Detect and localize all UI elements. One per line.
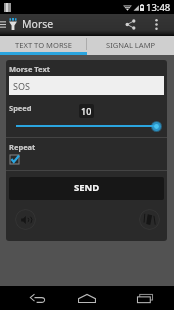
staticText: 10: [81, 105, 92, 117]
button[interactable]: More options: [143, 14, 169, 34]
staticText: Morse: [22, 17, 54, 31]
button[interactable]: SOS: [9, 76, 164, 95]
staticText: Morse Text: [9, 64, 51, 74]
button[interactable]: Play sound: [15, 209, 36, 230]
staticText: TEXT TO MORSE: [15, 40, 72, 50]
staticText: SIGNAL LAMP: [106, 40, 156, 50]
button[interactable]: Back: [17, 286, 57, 310]
button[interactable]: Flashlight: [139, 209, 160, 230]
button[interactable]: Repeat checkbox: [8, 153, 21, 166]
staticText: SOS: [13, 80, 30, 92]
button[interactable]: TEXT TO MORSE: [0, 36, 86, 52]
staticText: Speed: [9, 103, 32, 113]
button[interactable]: Share: [117, 14, 143, 34]
staticText: Repeat: [9, 142, 36, 152]
staticText: SEND: [74, 181, 100, 194]
button[interactable]: Recent apps: [125, 286, 165, 310]
button[interactable]: [6, 120, 167, 132]
button[interactable]: Navigation drawer: [0, 14, 8, 34]
button[interactable]: Home: [67, 286, 107, 310]
staticText: 13:48: [146, 1, 171, 14]
button[interactable]: SEND: [9, 177, 164, 200]
button[interactable]: SIGNAL LAMP: [87, 36, 174, 52]
